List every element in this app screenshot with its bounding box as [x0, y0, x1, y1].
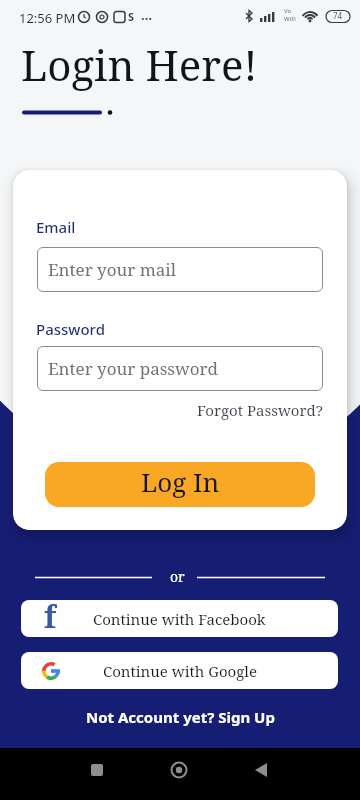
staticText: S: [128, 9, 135, 24]
staticText: Log In: [141, 464, 220, 499]
staticText: Vo WiFi: [284, 7, 296, 23]
staticText: Password: [36, 319, 105, 339]
staticText: Continue with Facebook: [93, 609, 266, 629]
button[interactable]: Continue with Google: [21, 652, 338, 689]
button[interactable]: Continue with Facebook: [21, 600, 338, 637]
staticText: Login Here!: [21, 36, 258, 93]
staticText: or: [170, 567, 185, 586]
staticText: Forgot Password?: [197, 400, 323, 420]
button[interactable]: Forgot Password?: [37, 400, 323, 420]
staticText: …: [141, 6, 153, 24]
button[interactable]: Log In: [45, 462, 315, 507]
staticText: Not Account yet? Sign Up: [86, 707, 275, 727]
staticText: 12:56 PM: [19, 9, 76, 27]
staticText: Enter your mail: [48, 258, 177, 281]
staticText: Continue with Google: [103, 661, 257, 681]
button[interactable]: Not Account yet? Sign Up: [0, 707, 360, 727]
staticText: Email: [36, 217, 76, 237]
button[interactable]: Enter your password: [37, 346, 323, 391]
button[interactable]: Enter your mail: [37, 247, 323, 292]
staticText: f: [44, 600, 57, 633]
staticText: 74: [333, 10, 343, 21]
staticText: Enter your password: [48, 357, 218, 380]
